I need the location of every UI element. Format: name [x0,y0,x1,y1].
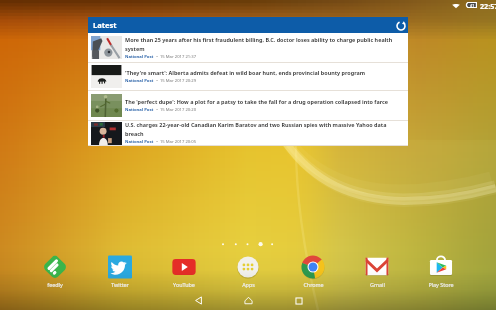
button[interactable]: Apps [224,255,272,288]
staticText: Twitter [111,281,129,288]
button[interactable]: More than 25 years after his first fraud… [88,33,408,63]
button[interactable]: feedly [31,255,79,288]
button[interactable]: Back [180,291,216,310]
staticText: 22:57 [480,1,496,11]
staticText: feedly [47,281,63,288]
staticText: YouTube [173,281,195,288]
button[interactable]: Recents [281,291,317,310]
button[interactable]: Latest [88,17,408,33]
staticText: National Post [125,139,154,145]
button[interactable]: Chrome [289,255,337,288]
button[interactable]: Play Store [417,255,465,288]
button[interactable]: Gmail [353,255,401,288]
button[interactable]: Home [230,291,266,310]
button[interactable]: 'They're smart': Alberta admits defeat i… [88,63,408,91]
staticText: The 'perfect dupe': How a plot for a pat… [125,98,389,105]
button[interactable]: Twitter [96,255,144,288]
staticText: U.S. charges 22-year-old Canadian Karim … [125,121,397,137]
button[interactable]: Refresh [393,18,408,33]
staticText: National Post [125,107,154,113]
staticText: National Post [125,78,154,84]
staticText: Gmail [370,281,385,288]
staticText: Latest [93,20,117,30]
staticText: Apps [242,281,255,288]
staticText: 'They're smart': Alberta admits defeat i… [125,69,366,76]
staticText: Chrome [303,281,324,288]
staticText: 41 [470,3,475,8]
staticText: Play Store [428,281,454,288]
staticText: • 15 Mar 2017 21:37 [154,54,197,60]
staticText: • 15 Mar 2017 20:05 [154,139,197,145]
button[interactable]: The 'perfect dupe': How a plot for a pat… [88,91,408,121]
staticText: • 15 Mar 2017 20:29 [154,78,197,84]
staticText: National Post [125,54,154,60]
staticText: • 15 Mar 2017 20:20 [154,107,197,113]
button[interactable]: YouTube [160,255,208,288]
button[interactable]: U.S. charges 22-year-old Canadian Karim … [88,121,408,146]
staticText: More than 25 years after his first fraud… [125,36,397,52]
